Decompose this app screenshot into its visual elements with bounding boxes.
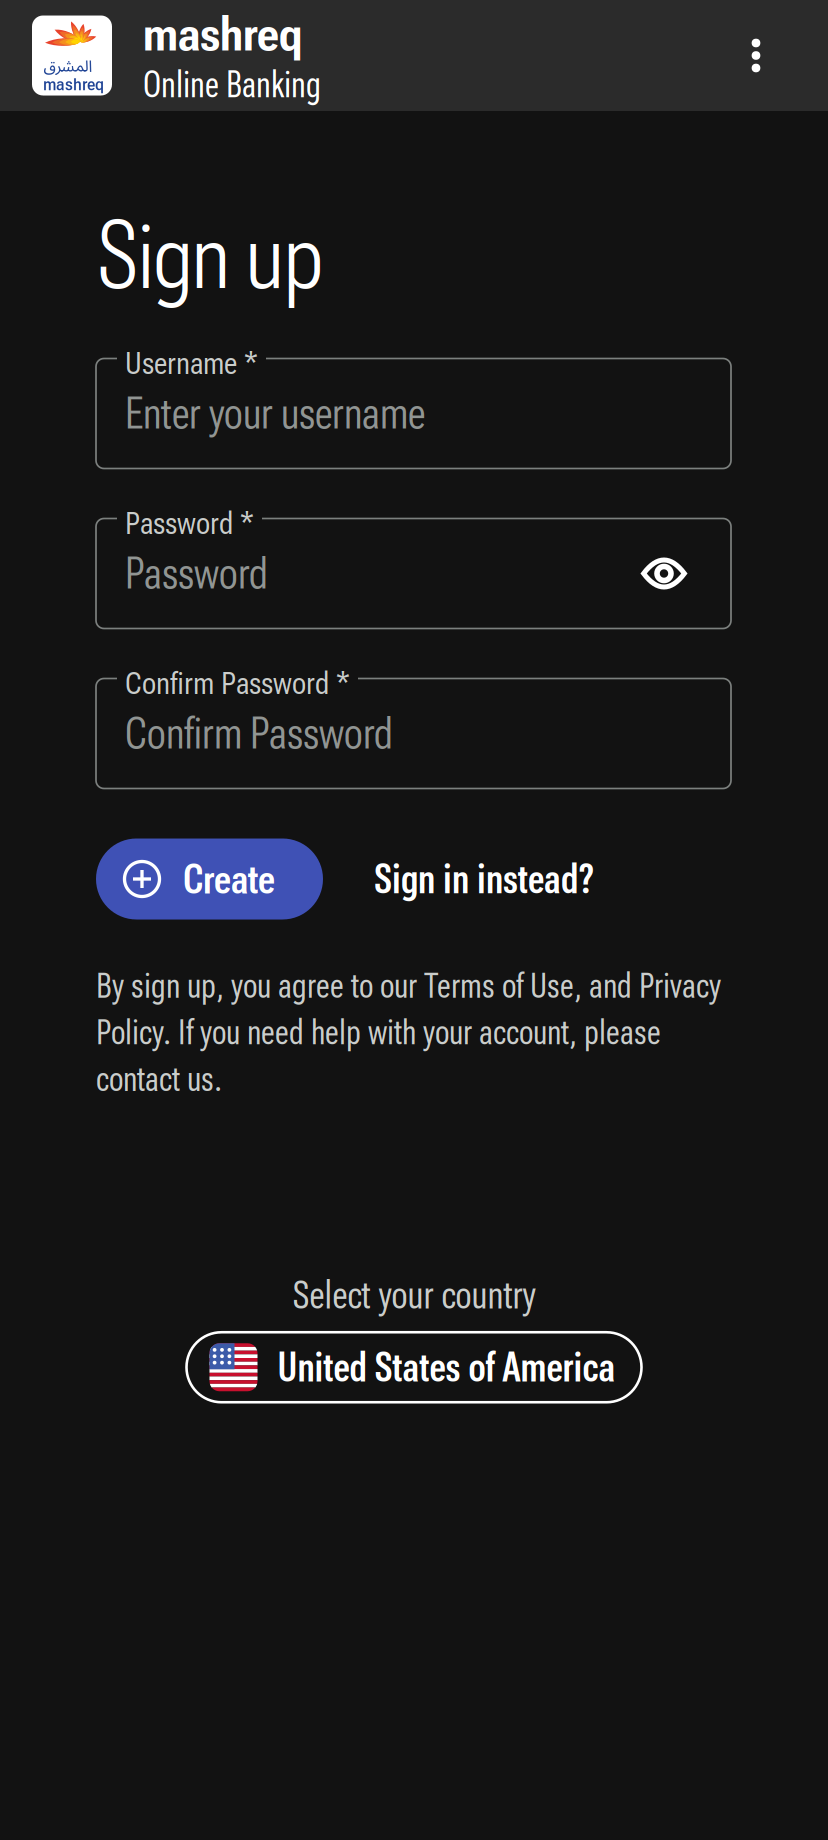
staticText: Select your country (292, 1271, 535, 1318)
staticText: Username * (125, 345, 258, 381)
staticText: United States of America (277, 1343, 615, 1391)
button[interactable]: United States of America (186, 1332, 641, 1402)
staticText: Online Banking (143, 62, 321, 106)
button[interactable]: More options (684, 0, 828, 111)
staticText: Confirm Password * (125, 665, 350, 701)
button[interactable]: Create (96, 838, 323, 919)
button[interactable]: Sign in instead? (349, 838, 620, 919)
staticText: Create (183, 854, 275, 904)
staticText: mashreq (143, 5, 302, 62)
button[interactable]: Show password (641, 556, 687, 590)
staticText: Sign in instead? (374, 855, 595, 903)
staticText: Password (125, 548, 268, 599)
staticText: Sign up (97, 199, 323, 311)
staticText: Password * (125, 505, 254, 541)
staticText: mashreq (43, 75, 104, 94)
staticText: Policy. If you need help with your accou… (96, 1012, 661, 1053)
staticText: Enter your username (125, 388, 425, 439)
staticText: By sign up, you agree to our Terms of Us… (96, 965, 721, 1006)
staticText: Confirm Password (125, 708, 393, 759)
staticText: المشرق (43, 49, 92, 83)
staticText: contact us. (96, 1059, 222, 1099)
